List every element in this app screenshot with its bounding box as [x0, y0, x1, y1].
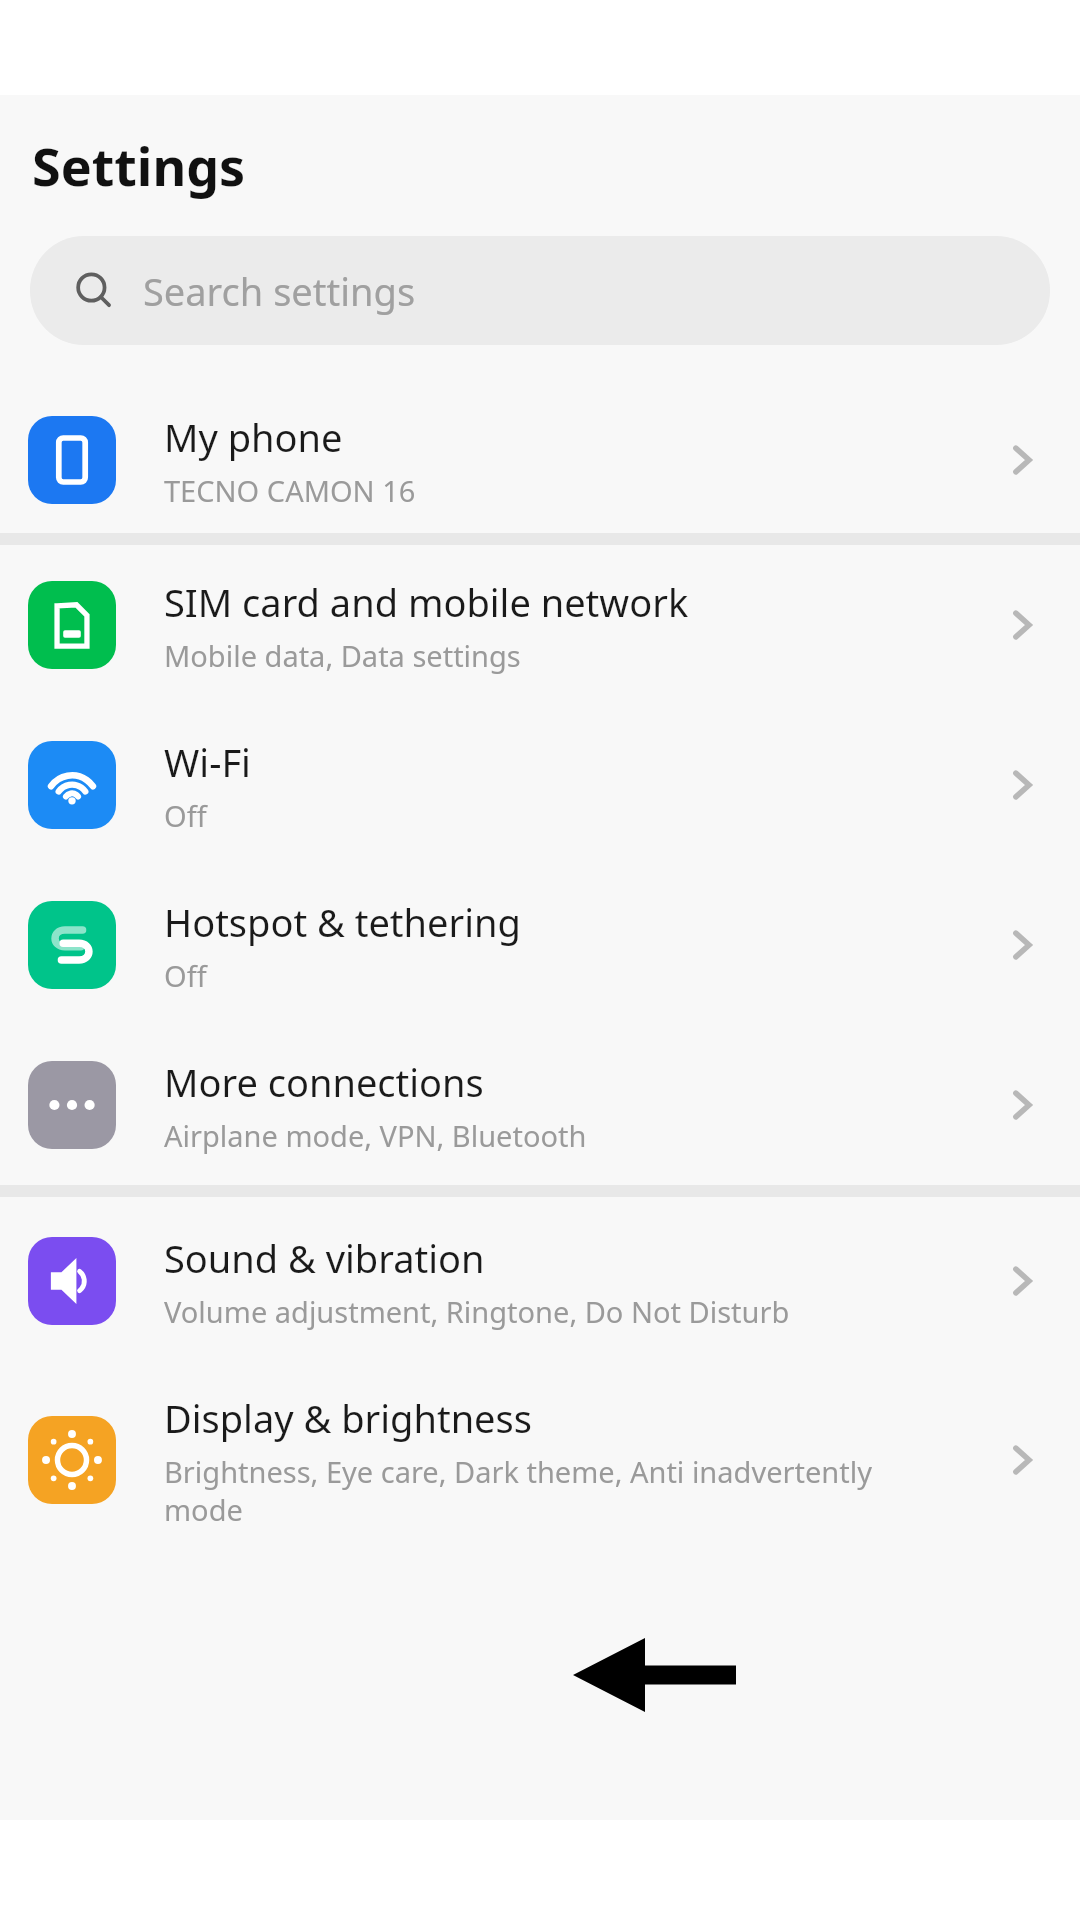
staticText: Off [164, 796, 207, 835]
staticText: More connections [164, 1056, 484, 1108]
staticText: Wi-Fi [164, 736, 251, 788]
staticText: Volume adjustment, Ringtone, Do Not Dist… [164, 1292, 790, 1331]
button[interactable]: Display & brightness [0, 1365, 1080, 1555]
button[interactable]: More connections [0, 1025, 1080, 1185]
button[interactable]: SIM card and mobile network [0, 545, 1080, 705]
staticText: My phone [164, 411, 343, 463]
button[interactable]: My phone [0, 387, 1080, 533]
button[interactable]: Sound & vibration [0, 1197, 1080, 1365]
staticText: TECNO CAMON 16 [164, 471, 416, 510]
staticText: Search settings [143, 265, 416, 317]
staticText: Hotspot & tethering [164, 896, 521, 948]
staticText: Airplane mode, VPN, Bluetooth [164, 1116, 587, 1155]
button[interactable]: Wi-Fi [0, 705, 1080, 865]
button[interactable]: Hotspot & tethering [0, 865, 1080, 1025]
staticText: Settings [32, 130, 246, 201]
staticText: Mobile data, Data settings [164, 636, 521, 675]
staticText: Sound & vibration [164, 1232, 485, 1284]
staticText: Display & brightness [164, 1392, 532, 1444]
button[interactable]: Search settings [30, 236, 1050, 345]
staticText: SIM card and mobile network [164, 576, 689, 628]
staticText: Off [164, 956, 207, 995]
staticText: Brightness, Eye care, Dark theme, Anti i… [164, 1452, 872, 1529]
